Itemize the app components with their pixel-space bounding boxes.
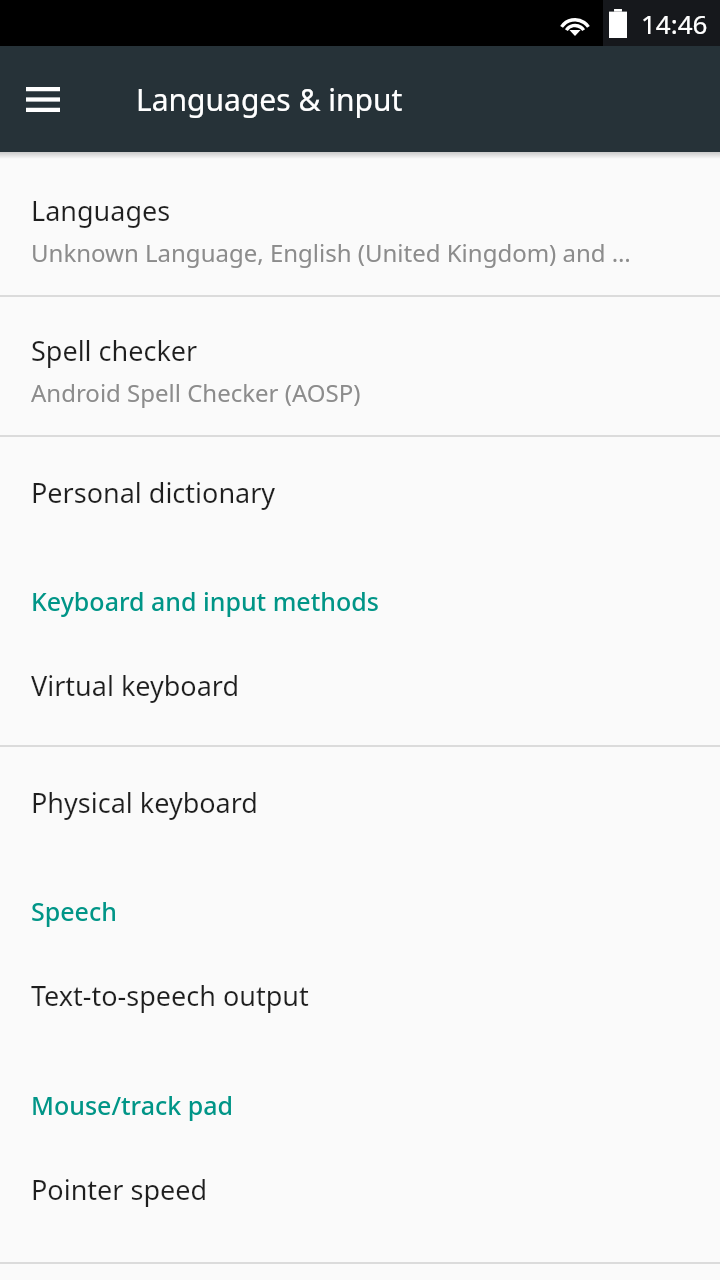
staticText: Pointer speed: [31, 1171, 208, 1208]
staticText: Personal dictionary: [31, 474, 276, 511]
button[interactable]: Personal dictionary: [0, 437, 720, 551]
staticText: Speech: [31, 894, 117, 928]
staticText: Spell checker: [31, 332, 198, 369]
button[interactable]: Physical keyboard: [0, 747, 720, 861]
button[interactable]: Languages: [0, 159, 720, 295]
button[interactable]: Pointer speed: [0, 1131, 720, 1262]
staticText: Languages & input: [136, 79, 403, 120]
staticText: Physical keyboard: [31, 784, 258, 821]
button[interactable]: Text-to-speech output: [0, 937, 720, 1055]
staticText: Languages: [31, 192, 171, 229]
staticText: Keyboard and input methods: [31, 584, 379, 618]
staticText: Virtual keyboard: [31, 667, 240, 704]
staticText: Mouse/track pad: [31, 1088, 234, 1122]
staticText: Text-to-speech output: [31, 977, 309, 1014]
button[interactable]: Open navigation menu: [14, 70, 72, 128]
staticText: Unknown Language, English (United Kingdo…: [31, 236, 631, 269]
button[interactable]: Spell checker: [0, 297, 720, 435]
staticText: 14:46: [641, 6, 708, 41]
staticText: Android Spell Checker (AOSP): [31, 376, 361, 409]
button[interactable]: Virtual keyboard: [0, 627, 720, 745]
